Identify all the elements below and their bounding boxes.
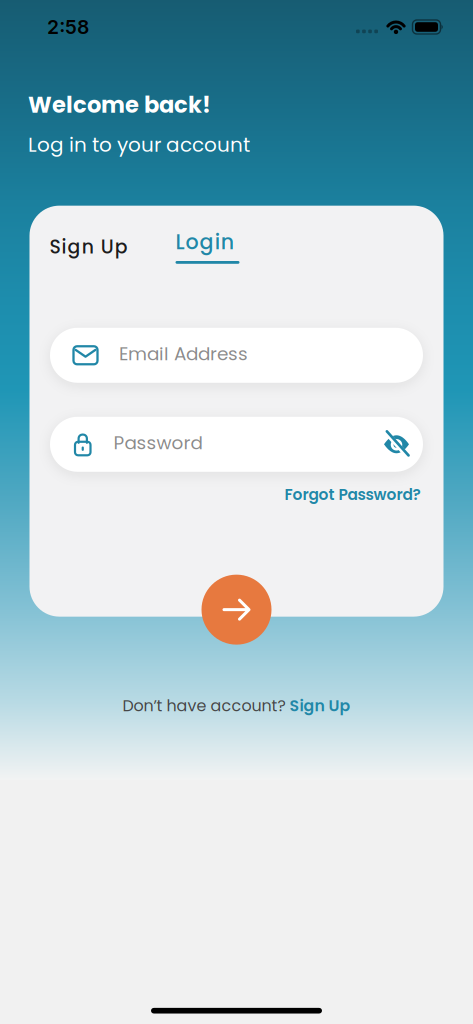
button[interactable]: Show password: [383, 431, 409, 458]
staticText: Email Address: [119, 341, 248, 367]
button[interactable]: Sign Up: [289, 695, 350, 717]
button[interactable]: Forgot Password?: [284, 484, 420, 505]
staticText: Sign Up: [289, 695, 350, 717]
staticText: 2:58: [47, 15, 89, 39]
staticText: Forgot Password?: [284, 484, 420, 505]
staticText: Sign Up: [49, 234, 128, 260]
staticText: Welcome back!: [28, 89, 211, 121]
button[interactable]: Sign Up: [49, 234, 131, 260]
staticText: Log in to your account: [28, 131, 250, 159]
staticText: Login: [175, 228, 234, 256]
staticText: Password: [113, 430, 202, 456]
button[interactable]: Login: [175, 234, 239, 270]
staticText: Don’t have account?: [122, 695, 289, 717]
button[interactable]: Log in: [201, 575, 271, 645]
